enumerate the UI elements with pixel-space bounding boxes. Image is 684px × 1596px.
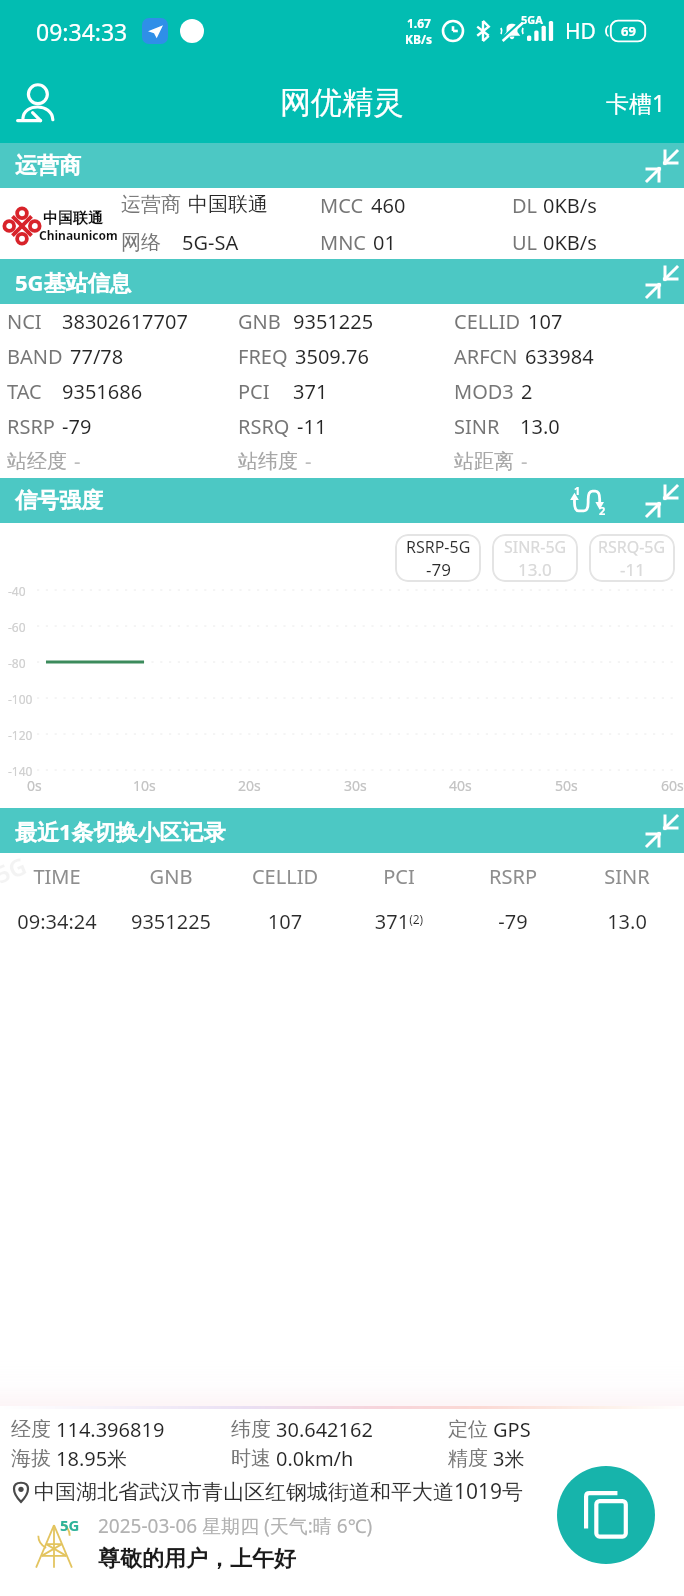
button[interactable]: Collapse section (641, 810, 683, 852)
staticText: 30.642162 (276, 1416, 373, 1443)
staticText: -120 (8, 727, 33, 743)
staticText: - (521, 448, 528, 475)
staticText: SINR-5G (504, 536, 567, 558)
button[interactable]: RSRQ-5G (589, 534, 675, 582)
staticText: 30s (344, 776, 367, 795)
staticText: - (74, 448, 81, 475)
staticText: 107 (528, 308, 563, 335)
staticText: 38302617707 (62, 308, 188, 335)
button[interactable]: Collapse section (641, 261, 683, 303)
button[interactable]: Collapse section (641, 145, 683, 187)
staticText: - (305, 448, 312, 475)
staticText: 最近1条切换小区记录 (15, 816, 226, 846)
staticText: -100 (8, 691, 33, 707)
staticText: 01 (373, 229, 396, 256)
staticText: 9351225 (293, 308, 374, 335)
staticText: -79 (456, 908, 570, 935)
staticText: 纬度 (231, 1417, 271, 1442)
staticText: 经度 (11, 1417, 51, 1442)
staticText: 网优精灵 (280, 83, 404, 122)
staticText: CELLID (228, 863, 342, 890)
staticText: 运营商 (15, 152, 81, 180)
staticText: 站经度 (7, 449, 67, 474)
staticText: PCI (238, 378, 270, 405)
staticText: 50s (555, 776, 578, 795)
staticText: -11 (297, 413, 327, 440)
staticText: BAND (7, 343, 63, 370)
staticText: 网络 (121, 230, 161, 255)
staticText: FREQ (238, 343, 288, 370)
staticText: 站距离 (454, 449, 514, 474)
staticText: 20s (238, 776, 261, 795)
staticText: 中国湖北省武汉市青山区红钢城街道和平大道1019号 (34, 1477, 524, 1506)
staticText: 时速 (231, 1446, 271, 1471)
staticText: TAC (7, 378, 42, 405)
staticText: 77/78 (70, 343, 124, 370)
staticText: -140 (8, 763, 33, 779)
staticText: 9351225 (114, 908, 228, 935)
staticText: 13.0 (520, 413, 560, 440)
staticText: GNB (238, 308, 281, 335)
staticText: MCC (320, 192, 364, 219)
staticText: 107 (228, 908, 342, 935)
staticText: -40 (8, 583, 26, 599)
staticText: 1.67 (407, 15, 431, 31)
staticText: 2 (521, 378, 533, 405)
staticText: -80 (8, 655, 26, 671)
button[interactable]: RSRP-5G (395, 534, 481, 582)
staticText: MOD3 (454, 378, 514, 405)
staticText: DL (512, 192, 538, 219)
staticText: NCI (7, 308, 42, 335)
staticText: 尊敬的用户，上午好 (98, 1545, 296, 1573)
staticText: 3米 (493, 1445, 525, 1472)
staticText: -60 (8, 619, 26, 635)
button[interactable]: Collapse section (641, 480, 683, 522)
button[interactable]: Copy report (557, 1466, 655, 1564)
staticText: 2 (599, 503, 606, 518)
staticText: -79 (426, 558, 451, 581)
staticText: 13.0 (518, 558, 552, 581)
staticText: 0s (27, 776, 42, 795)
staticText: HD (565, 17, 596, 46)
staticText: 5G基站信息 (15, 267, 132, 297)
staticText: RSRQ-5G (598, 536, 666, 558)
staticText: UL (512, 229, 538, 256)
staticText: 5G (60, 1515, 80, 1535)
staticText: MNC (320, 229, 366, 256)
staticText: 海拔 (11, 1446, 51, 1471)
staticText: PCI (342, 863, 456, 890)
staticText: 2025-03-06 星期四 (天气:晴 6℃) (98, 1513, 373, 1539)
staticText: RSRP (456, 863, 570, 890)
staticText: GPS (493, 1416, 531, 1443)
staticText: 10s (133, 776, 156, 795)
staticText: 0.0km/h (276, 1445, 354, 1472)
staticText: 633984 (525, 343, 594, 370)
button[interactable]: 卡槽1 (588, 77, 684, 128)
button[interactable]: Swap SIM 1 and 2 (563, 478, 609, 523)
staticText: -79 (62, 413, 92, 440)
staticText: RSRP-5G (406, 536, 471, 558)
staticText: 09:34:33 (36, 16, 128, 47)
staticText: 1 (574, 483, 581, 498)
staticText: RSRP (7, 413, 55, 440)
staticText: 69 (621, 22, 636, 40)
staticText: Chinaunicom (39, 227, 118, 243)
staticText: 运营商 (121, 192, 181, 217)
staticText: KB/s (405, 31, 432, 47)
staticText: -11 (620, 558, 645, 581)
staticText: ARFCN (454, 343, 518, 370)
button[interactable]: Profile (8, 74, 66, 132)
staticText: GNB (114, 863, 228, 890)
staticText: SINR (570, 863, 684, 890)
staticText: 信号强度 (15, 487, 103, 515)
staticText: TIME (0, 863, 114, 890)
staticText: 定位 (448, 1417, 488, 1442)
staticText: RSRQ (238, 413, 290, 440)
staticText: 0KB/s (543, 229, 597, 256)
staticText: SINR (454, 413, 500, 440)
staticText: 371(2) (342, 908, 456, 935)
staticText: CELLID (454, 308, 521, 335)
staticText: 5G-SA (182, 229, 239, 256)
button[interactable]: SINR-5G (492, 534, 578, 582)
staticText: 9351686 (62, 378, 143, 405)
